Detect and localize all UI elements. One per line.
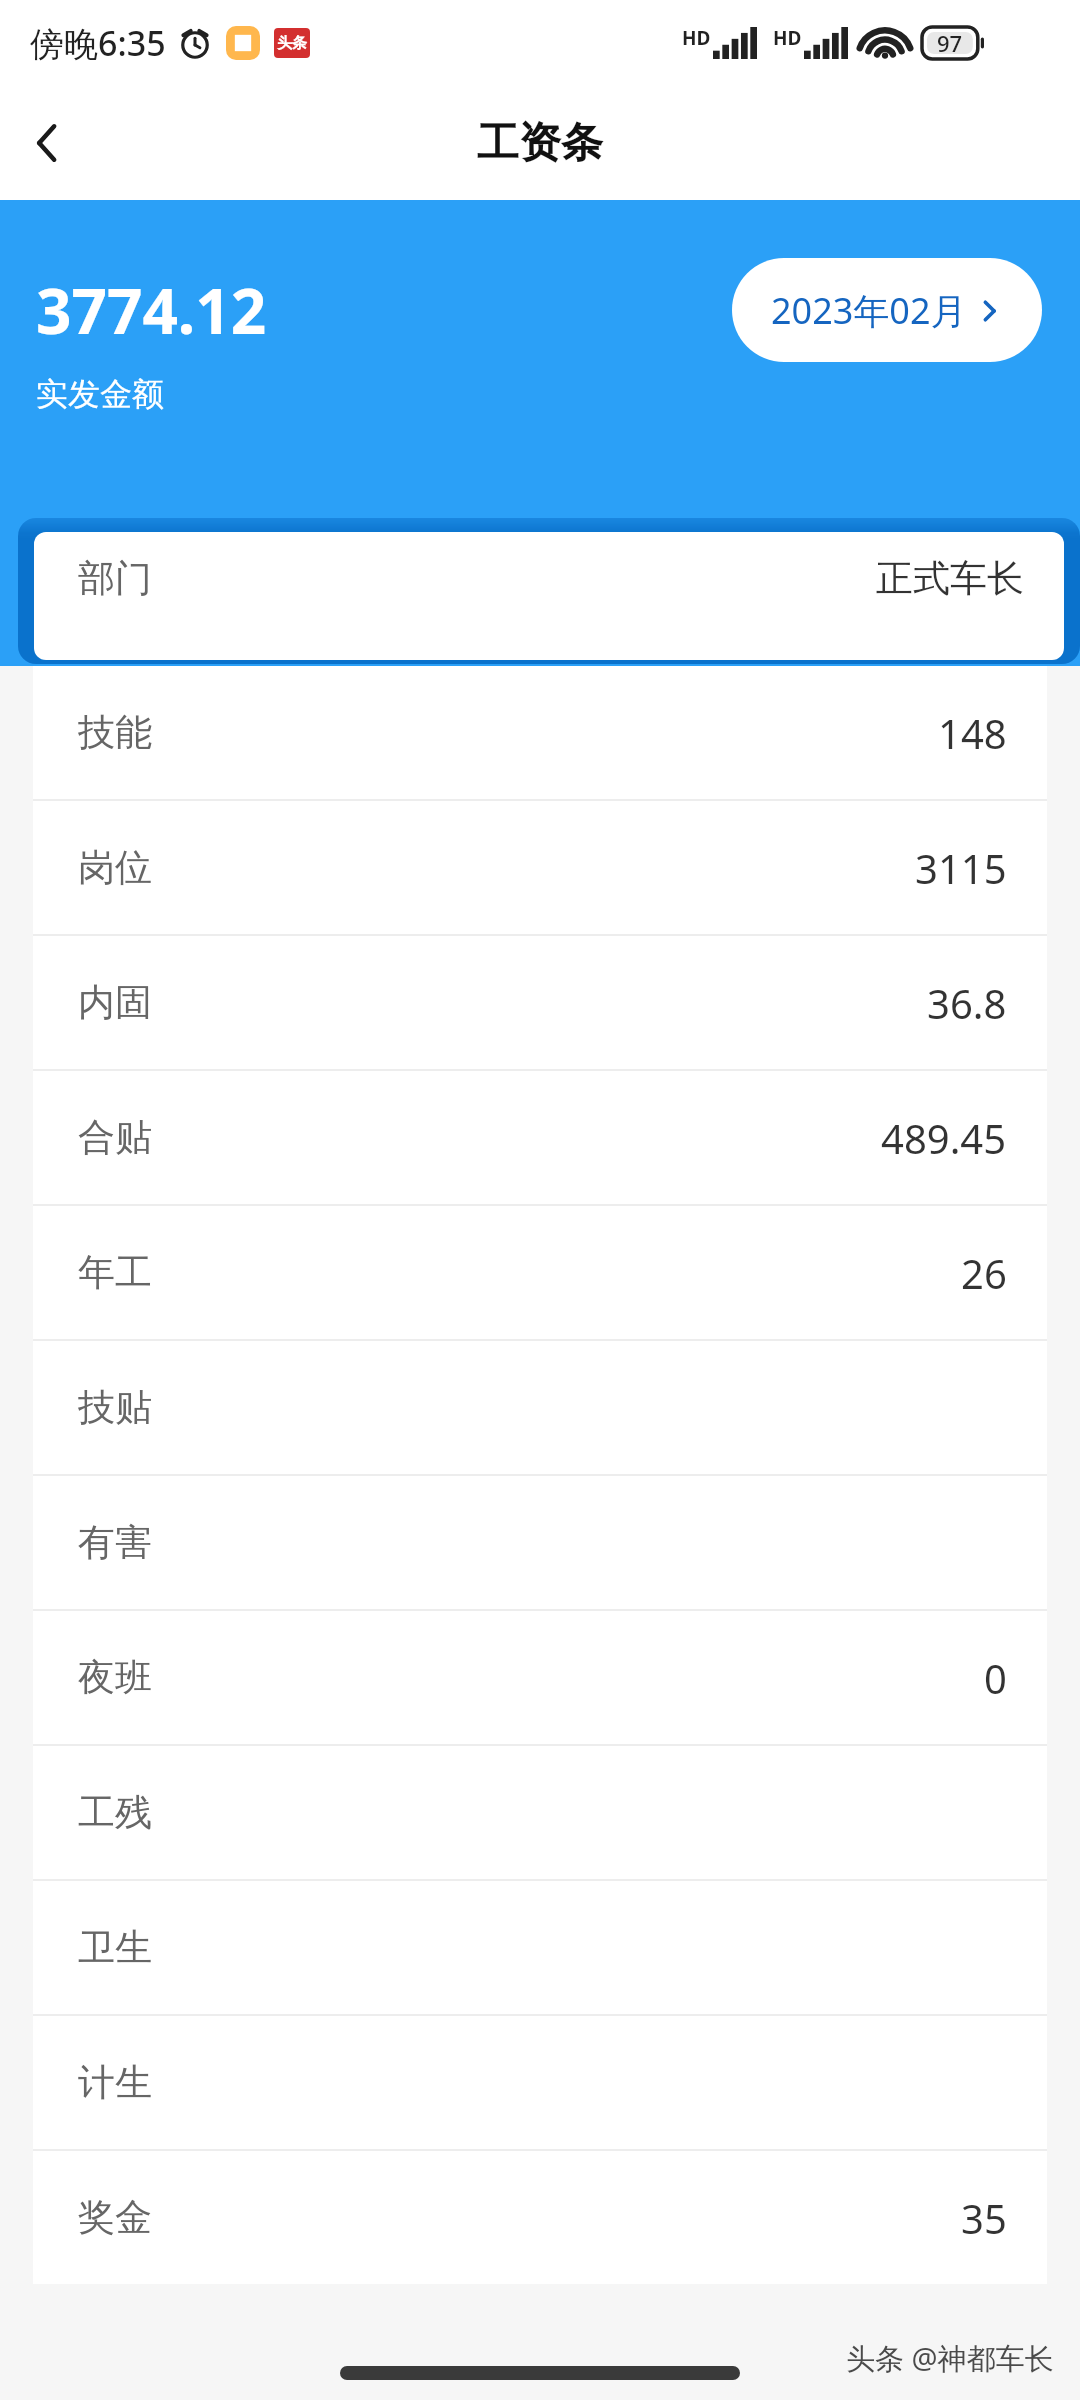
staticText: 技能	[78, 709, 152, 756]
staticText: 正式车长	[876, 555, 1024, 602]
button[interactable]: 有害	[33, 1476, 1047, 1609]
staticText: 夜班	[78, 1654, 152, 1701]
staticText: 年工	[78, 1249, 152, 1296]
button[interactable]: 工残	[33, 1746, 1047, 1879]
staticText: 傍晚6:35	[30, 20, 166, 66]
staticText: 实发金额	[36, 374, 164, 414]
staticText: 工残	[78, 1789, 152, 1836]
staticText: 内固	[78, 979, 152, 1026]
staticText: 148	[938, 706, 1007, 760]
button[interactable]: Back	[0, 95, 96, 191]
staticText: HD	[682, 25, 711, 51]
staticText: 97	[937, 28, 963, 58]
staticText: 计生	[78, 2059, 152, 2106]
button[interactable]: 计生	[33, 2016, 1047, 2149]
staticText: 奖金	[78, 2194, 152, 2241]
button[interactable]: 技贴	[33, 1341, 1047, 1474]
button[interactable]: 年工	[33, 1206, 1047, 1339]
button[interactable]: 岗位	[33, 801, 1047, 934]
staticText: 0	[984, 1651, 1007, 1705]
staticText: 35	[961, 2191, 1007, 2245]
button[interactable]: 内固	[33, 936, 1047, 1069]
staticText: 岗位	[78, 844, 152, 891]
button[interactable]: 部门	[34, 532, 1064, 660]
staticText: HD	[773, 25, 802, 51]
staticText: 26	[961, 1246, 1007, 1300]
staticText: 2023年02月	[771, 286, 967, 335]
staticText: 头条	[277, 34, 307, 53]
staticText: 部门	[78, 555, 152, 602]
staticText: 技贴	[78, 1384, 152, 1431]
button[interactable]: 夜班	[33, 1611, 1047, 1744]
staticText: 3774.12	[36, 268, 267, 352]
staticText: 489.45	[881, 1111, 1007, 1165]
button[interactable]: 2023年02月	[732, 258, 1042, 362]
staticText: 合贴	[78, 1114, 152, 1161]
button[interactable]: 奖金	[33, 2151, 1047, 2284]
button[interactable]: 技能	[33, 666, 1047, 799]
staticText: 头条 @神都车长	[846, 2338, 1054, 2378]
staticText: 有害	[78, 1519, 152, 1566]
staticText: 36.8	[927, 976, 1007, 1030]
button[interactable]: 卫生	[33, 1881, 1047, 2014]
staticText: 3115	[915, 841, 1007, 895]
staticText: 卫生	[78, 1924, 152, 1971]
button[interactable]: 合贴	[33, 1071, 1047, 1204]
staticText: 工资条	[477, 117, 603, 170]
